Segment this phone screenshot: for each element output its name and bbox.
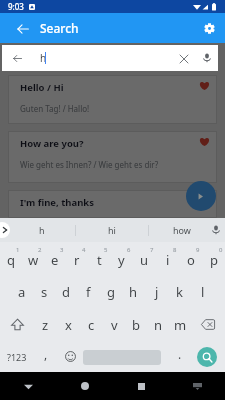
- button[interactable]: Shift: [0, 308, 34, 341]
- button[interactable]: d: [55, 275, 77, 308]
- button[interactable]: x: [57, 308, 80, 341]
- button[interactable]: Backspace: [191, 308, 225, 341]
- staticText: a: [18, 283, 26, 301]
- staticText: 2: [38, 246, 42, 254]
- button[interactable]: n: [147, 308, 169, 341]
- staticText: Hello / Hi: [20, 81, 64, 94]
- staticText: 3: [60, 246, 64, 254]
- staticText: u: [140, 251, 149, 269]
- staticText: Search: [40, 20, 79, 36]
- staticText: h: [39, 224, 45, 236]
- button[interactable]: o: [179, 242, 202, 275]
- staticText: How are you?: [20, 137, 84, 150]
- button[interactable]: v: [103, 308, 125, 341]
- button[interactable]: l: [191, 275, 214, 308]
- staticText: p: [210, 251, 218, 269]
- staticText: 4: [82, 246, 86, 254]
- staticText: j: [155, 283, 159, 301]
- button[interactable]: t: [88, 242, 110, 275]
- button[interactable]: Back: [8, 14, 37, 43]
- button[interactable]: Settings: [195, 14, 224, 43]
- button[interactable]: e: [44, 242, 66, 275]
- staticText: t: [97, 251, 102, 269]
- staticText: ,: [44, 346, 48, 362]
- staticText: how: [173, 224, 191, 236]
- button[interactable]: hi: [76, 218, 148, 242]
- button[interactable]: Voice input: [206, 218, 225, 242]
- staticText: k: [176, 283, 183, 301]
- staticText: g: [107, 283, 115, 301]
- staticText: m: [174, 316, 187, 334]
- button[interactable]: Voice search: [196, 47, 218, 69]
- button[interactable]: Play: [186, 181, 216, 211]
- button[interactable]: q: [0, 242, 22, 275]
- button[interactable]: b: [125, 308, 147, 341]
- staticText: .: [178, 346, 182, 362]
- button[interactable]: h: [122, 275, 145, 308]
- button[interactable]: w: [22, 242, 44, 275]
- button[interactable]: Period: [168, 341, 192, 372]
- staticText: n: [154, 316, 163, 334]
- staticText: 8: [173, 246, 177, 254]
- staticText: Guten Tag! / Hallo!: [20, 103, 90, 114]
- staticText: hi: [108, 224, 116, 236]
- button[interactable]: Emoji: [58, 341, 82, 372]
- button[interactable]: Comma: [34, 341, 58, 372]
- button[interactable]: Hello / Hi: [8, 75, 217, 124]
- button[interactable]: More suggestions: [0, 222, 10, 238]
- button[interactable]: g: [99, 275, 122, 308]
- staticText: 9: [196, 246, 200, 254]
- staticText: 5: [104, 246, 108, 254]
- staticText: 7: [150, 246, 154, 254]
- button[interactable]: Back: [4, 45, 30, 71]
- staticText: d: [62, 283, 70, 301]
- button[interactable]: Back: [0, 372, 57, 400]
- staticText: l: [201, 283, 205, 301]
- staticText: r: [74, 251, 80, 269]
- button[interactable]: How are you?: [8, 131, 217, 183]
- staticText: 6: [127, 246, 131, 254]
- button[interactable]: k: [168, 275, 191, 308]
- staticText: z: [42, 316, 49, 334]
- staticText: v: [111, 316, 118, 334]
- button[interactable]: a: [11, 275, 33, 308]
- button[interactable]: Clear: [171, 46, 196, 71]
- staticText: o: [187, 251, 195, 269]
- button[interactable]: Home: [57, 372, 113, 400]
- button[interactable]: s: [33, 275, 55, 308]
- staticText: y: [118, 251, 125, 269]
- button[interactable]: j: [145, 275, 168, 308]
- staticText: w: [28, 251, 39, 269]
- button[interactable]: Favorite: [198, 135, 211, 148]
- button[interactable]: m: [169, 308, 191, 341]
- button[interactable]: Search: [192, 341, 221, 372]
- staticText: c: [88, 316, 95, 334]
- staticText: Wie geht es Ihnen? / Wie geht es dir?: [20, 159, 159, 170]
- button[interactable]: z: [34, 308, 57, 341]
- staticText: i: [166, 251, 170, 269]
- staticText: f: [86, 283, 91, 301]
- staticText: 9:03: [8, 1, 24, 12]
- button[interactable]: Hide keyboard: [169, 372, 225, 400]
- button[interactable]: Favorite: [198, 79, 211, 92]
- staticText: s: [41, 283, 48, 301]
- staticText: x: [65, 316, 72, 334]
- button[interactable]: i: [156, 242, 179, 275]
- button[interactable]: u: [133, 242, 156, 275]
- button[interactable]: ?123: [0, 341, 34, 372]
- button[interactable]: y: [110, 242, 133, 275]
- button[interactable]: f: [77, 275, 99, 308]
- button[interactable]: h: [9, 218, 75, 242]
- staticText: h: [129, 283, 138, 301]
- button[interactable]: p: [202, 242, 225, 275]
- button[interactable]: how: [149, 218, 214, 242]
- staticText: 1: [16, 246, 20, 254]
- staticText: ?123: [7, 351, 27, 363]
- button[interactable]: Recents: [113, 372, 169, 400]
- staticText: I'm fine, thanks: [20, 196, 95, 209]
- button[interactable]: I'm fine, thanks: [8, 190, 217, 218]
- button[interactable]: r: [66, 242, 88, 275]
- staticText: b: [132, 316, 140, 334]
- button[interactable]: c: [80, 308, 103, 341]
